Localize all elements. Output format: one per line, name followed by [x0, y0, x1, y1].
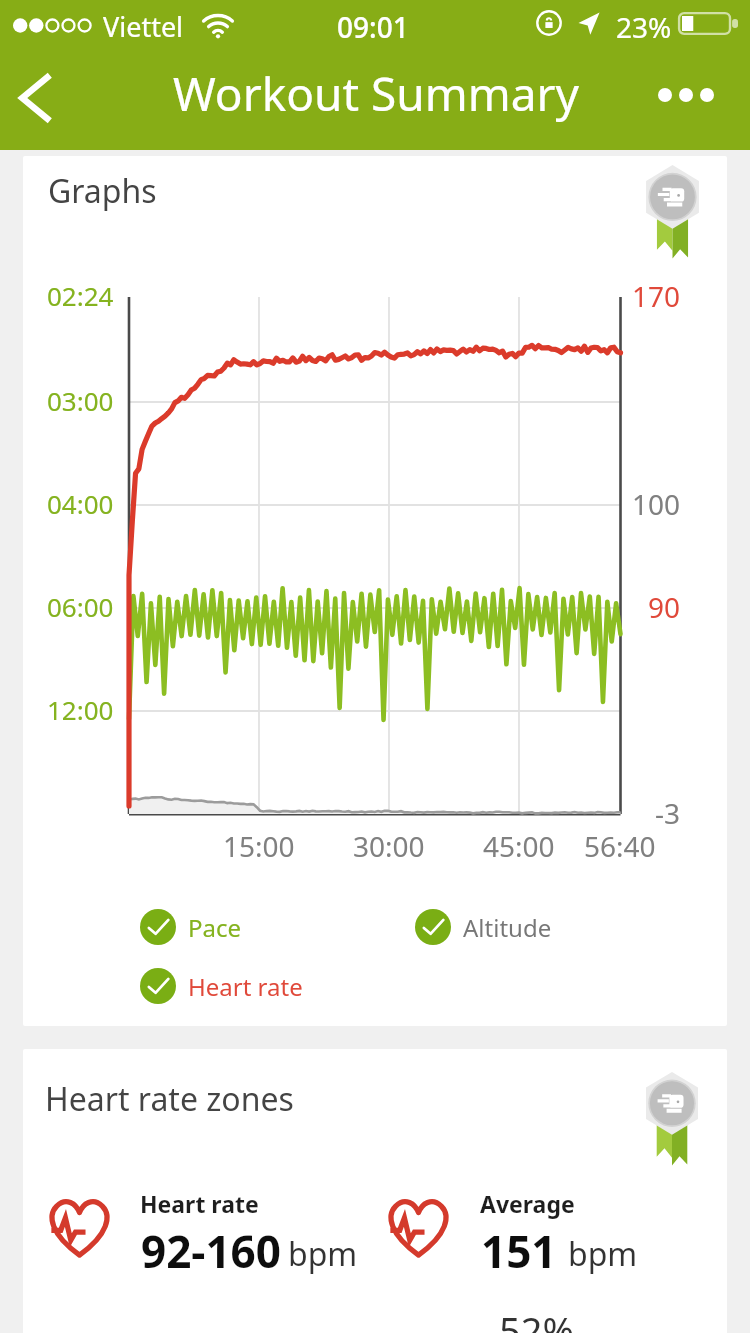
staticText: 03:00: [47, 383, 114, 418]
button[interactable]: Achievement badge: [642, 1068, 702, 1166]
staticText: 12:00: [47, 692, 114, 727]
button[interactable]: Graphs: [23, 156, 727, 1026]
staticText: 100: [632, 485, 681, 523]
staticText: 56:40: [584, 827, 656, 865]
staticText: 170: [632, 277, 681, 315]
staticText: 15:00: [223, 827, 295, 865]
staticText: Pace: [188, 911, 242, 944]
staticText: bpm: [288, 1232, 358, 1276]
staticText: 09:01: [337, 8, 409, 46]
button[interactable]: Achievement badge: [642, 162, 703, 259]
staticText: Average: [480, 1188, 575, 1219]
staticText: 06:00: [47, 589, 114, 624]
staticText: Viettel: [103, 8, 184, 45]
staticText: 23%: [616, 8, 672, 46]
staticText: 30:00: [353, 827, 425, 865]
staticText: Heart rate zones: [45, 1077, 294, 1121]
button[interactable]: Heart rate zones: [23, 1049, 727, 1333]
staticText: bpm: [568, 1232, 638, 1276]
staticText: 52%: [499, 1304, 575, 1333]
button[interactable]: Heart rate: [140, 968, 303, 1004]
button[interactable]: Altitude: [415, 909, 552, 945]
staticText: Altitude: [463, 911, 552, 944]
staticText: Heart rate: [140, 1188, 259, 1219]
button[interactable]: More options: [638, 55, 750, 141]
button[interactable]: Back: [0, 55, 72, 141]
staticText: 90: [648, 588, 681, 626]
staticText: 04:00: [47, 486, 114, 521]
staticText: Workout Summary: [173, 62, 580, 125]
staticText: 45:00: [483, 827, 555, 865]
staticText: 02:24: [47, 278, 114, 313]
staticText: Graphs: [48, 169, 157, 213]
staticText: 151: [481, 1221, 557, 1281]
staticText: -3: [655, 794, 681, 832]
button[interactable]: Pace: [140, 909, 242, 945]
staticText: 92-160: [141, 1221, 281, 1281]
staticText: Heart rate: [188, 970, 303, 1003]
